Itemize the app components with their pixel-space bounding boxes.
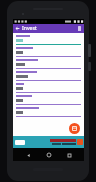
button[interactable] bbox=[16, 59, 81, 69]
button[interactable] bbox=[16, 47, 81, 57]
staticText: Invest bbox=[22, 25, 75, 32]
button[interactable]: Home bbox=[44, 150, 54, 160]
button[interactable]: More options bbox=[75, 24, 84, 33]
button[interactable]: Calculate bbox=[69, 123, 80, 134]
button[interactable]: Back bbox=[23, 150, 33, 160]
button[interactable] bbox=[16, 95, 81, 105]
button[interactable]: Advertisement bbox=[13, 136, 84, 148]
button[interactable]: Navigate up bbox=[13, 24, 22, 33]
button[interactable] bbox=[16, 83, 81, 93]
button[interactable] bbox=[16, 71, 81, 81]
button[interactable] bbox=[16, 35, 81, 45]
button[interactable] bbox=[16, 107, 81, 117]
button[interactable]: Recent apps bbox=[64, 150, 74, 160]
